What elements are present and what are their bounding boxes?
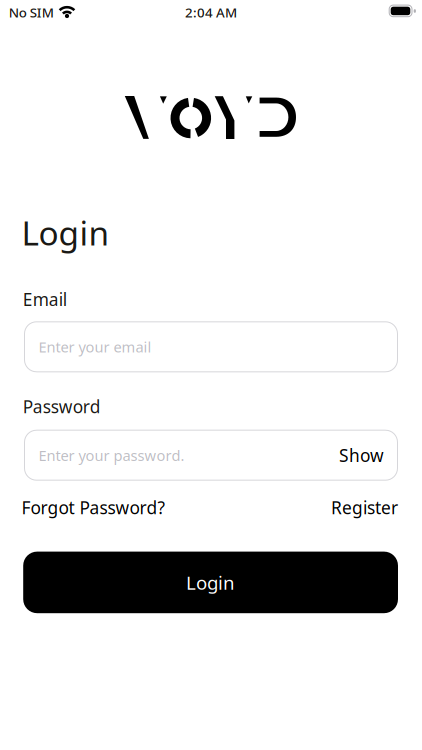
staticText: Forgot Password?: [22, 496, 166, 519]
button[interactable]: Login: [23, 552, 398, 613]
staticText: No SIM: [9, 3, 54, 21]
staticText: Login: [21, 210, 109, 255]
button[interactable]: Enter your password.: [24, 430, 398, 481]
button[interactable]: Forgot Password?: [22, 496, 166, 519]
button[interactable]: Show: [339, 444, 384, 467]
staticText: Login: [186, 570, 235, 595]
button[interactable]: Register: [331, 496, 398, 519]
staticText: Enter your email: [38, 337, 151, 357]
staticText: Show: [339, 444, 384, 467]
staticText: Enter your password.: [38, 445, 184, 465]
button[interactable]: Enter your email: [24, 321, 398, 372]
staticText: Register: [331, 496, 398, 519]
staticText: 2:04 AM: [185, 3, 237, 21]
staticText: Email: [23, 288, 67, 311]
staticText: Password: [23, 395, 101, 418]
